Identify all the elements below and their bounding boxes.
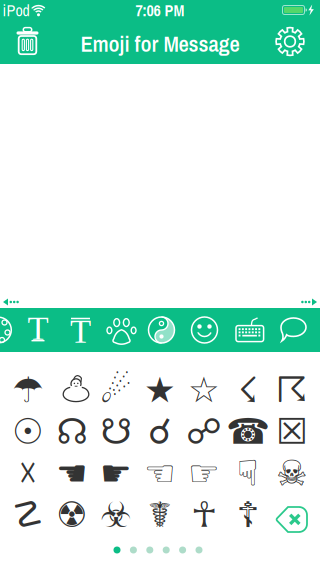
- button[interactable]: Emoji ☣: [95, 495, 137, 535]
- button[interactable]: Emoji ☈: [271, 370, 313, 410]
- button[interactable]: Emoji ☊: [51, 412, 93, 452]
- button[interactable]: Emoji ☎: [227, 412, 269, 452]
- button[interactable]: Snowman emoji: [51, 370, 93, 410]
- button[interactable]: Emoji ☌: [139, 412, 181, 452]
- button[interactable]: Emoji ☚: [51, 453, 93, 493]
- button[interactable]: More categories: [0, 308, 16, 352]
- staticText: Emoji for Message: [80, 28, 239, 59]
- button[interactable]: Text art: [68, 316, 92, 344]
- staticText: ☒: [276, 411, 308, 452]
- staticText: ☦: [236, 494, 259, 535]
- staticText: T: [27, 309, 48, 347]
- button[interactable]: Emoji ☍: [183, 412, 225, 452]
- staticText: ☎: [226, 411, 270, 452]
- button[interactable]: Emoji ☥: [183, 495, 225, 535]
- button[interactable]: Emoji ☡: [7, 495, 49, 535]
- staticText: ☆: [188, 369, 220, 410]
- button[interactable]: Keyboard: [235, 317, 265, 343]
- staticText: ☞: [188, 453, 220, 494]
- button[interactable]: Emoji ☓: [7, 453, 49, 493]
- staticText: ☇: [238, 369, 258, 410]
- button[interactable]: Emoji ☋: [95, 412, 137, 452]
- staticText: ☟: [237, 453, 259, 494]
- button[interactable]: Emoji ☤: [139, 495, 181, 535]
- button[interactable]: Emoji ☉: [7, 412, 49, 452]
- staticText: ☠: [276, 453, 308, 494]
- staticText: 7:06 PM: [135, 0, 184, 21]
- button[interactable]: Emoji ☦: [227, 495, 269, 535]
- button[interactable]: Symbols: [147, 316, 175, 344]
- staticText: ☛: [100, 453, 132, 494]
- button[interactable]: Delete: [15, 27, 39, 55]
- button[interactable]: Settings: [275, 26, 305, 56]
- button[interactable]: Delete: [274, 506, 310, 536]
- staticText: iPod: [2, 0, 29, 21]
- button[interactable]: Emoji ☢: [51, 495, 93, 535]
- staticText: ★: [144, 369, 176, 410]
- staticText: ☍: [186, 411, 222, 452]
- staticText: ☂: [12, 369, 44, 410]
- button[interactable]: Emoji ☆: [183, 370, 225, 410]
- button[interactable]: Emoji ☇: [227, 370, 269, 410]
- button[interactable]: Emoji ★: [139, 370, 181, 410]
- button[interactable]: Emoji ☞: [183, 453, 225, 493]
- button[interactable]: Emoji ☜: [139, 453, 181, 493]
- staticText: ☈: [276, 369, 308, 410]
- staticText: ☚: [56, 453, 88, 494]
- button[interactable]: Emoji ☟: [227, 453, 269, 493]
- staticText: ☣: [100, 494, 132, 535]
- button[interactable]: Emoji ☂: [7, 370, 49, 410]
- staticText: ☌: [148, 411, 172, 452]
- staticText: ☊: [56, 411, 87, 452]
- staticText: ☡: [12, 494, 44, 535]
- staticText: ☋: [100, 411, 131, 452]
- button[interactable]: Emoji ☄: [95, 370, 137, 410]
- button[interactable]: Emoji ☠: [271, 453, 313, 493]
- staticText: ☄: [100, 369, 132, 410]
- button[interactable]: Messages: [279, 317, 307, 343]
- button[interactable]: Emoji ☛: [95, 453, 137, 493]
- staticText: ☓: [18, 453, 37, 494]
- button[interactable]: Emoji ☒: [271, 412, 313, 452]
- button[interactable]: Animal emoji: [106, 315, 136, 345]
- staticText: ☉: [12, 411, 44, 452]
- staticText: T: [70, 312, 91, 350]
- button[interactable]: Text symbols: [26, 317, 50, 343]
- staticText: ☜: [144, 453, 176, 494]
- staticText: ☥: [191, 494, 217, 535]
- button[interactable]: Smileys: [190, 316, 218, 344]
- staticText: ☢: [56, 494, 88, 535]
- staticText: ☤: [148, 494, 172, 535]
